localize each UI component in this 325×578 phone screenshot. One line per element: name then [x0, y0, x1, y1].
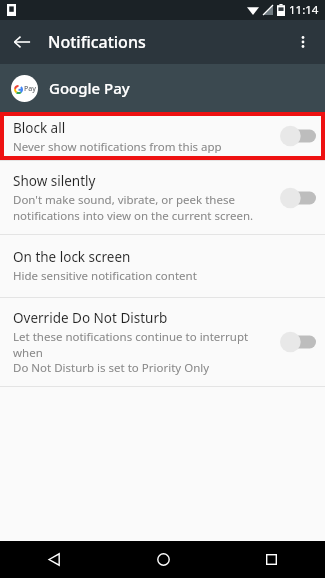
staticText: Google Pay [49, 78, 130, 98]
staticText: Override Do Not Disturb [13, 309, 168, 327]
button[interactable]: Toggle [280, 187, 316, 209]
staticText: Never show notifications from this app [13, 139, 222, 153]
staticText: Let these notifications continue to inte… [13, 329, 272, 375]
button[interactable]: Recent apps [217, 541, 325, 578]
staticText: Don't make sound, vibrate, or peek these… [13, 192, 254, 223]
button[interactable]: Show silently [0, 161, 325, 234]
staticText: On the lock screen [13, 248, 131, 266]
staticText: Pay [24, 84, 36, 94]
staticText: Block all [13, 119, 66, 137]
button[interactable]: Block all [0, 112, 325, 160]
staticText: 11:14 [289, 2, 319, 18]
button[interactable]: More options [281, 20, 325, 64]
staticText: Show silently [13, 172, 96, 190]
button[interactable]: Back [0, 20, 44, 64]
button[interactable]: Override Do Not Disturb [0, 298, 325, 386]
staticText: Hide sensitive notification content [13, 268, 197, 284]
staticText: Notifications [48, 31, 146, 53]
button[interactable]: On the lock screen [0, 235, 325, 297]
button[interactable]: Home [109, 541, 217, 578]
button[interactable]: Back [0, 541, 109, 578]
button[interactable]: Pay [0, 64, 325, 112]
button[interactable]: Toggle [280, 125, 316, 147]
button[interactable]: Toggle [280, 331, 316, 353]
